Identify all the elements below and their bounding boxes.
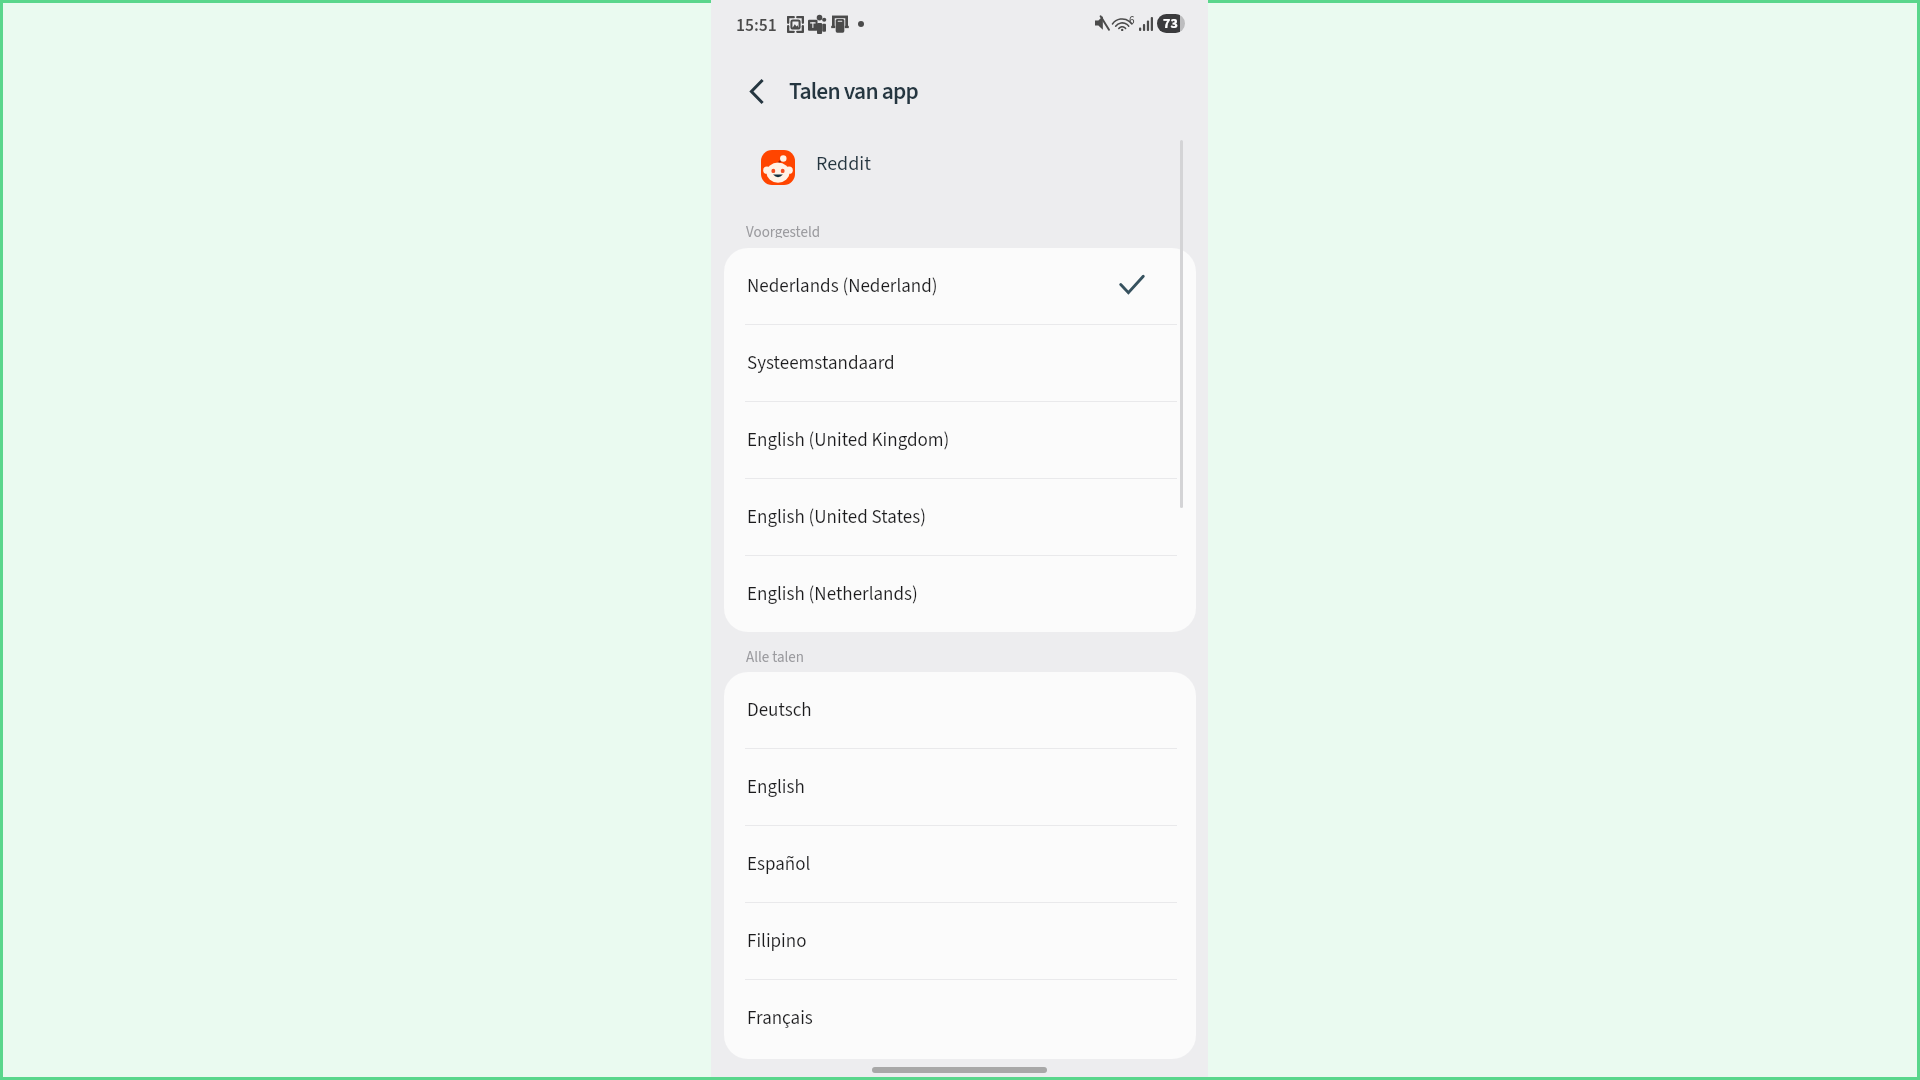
staticText: 73 bbox=[1163, 14, 1178, 33]
staticText: Systeemstandaard bbox=[747, 350, 895, 377]
staticText: English (Netherlands) bbox=[747, 581, 918, 608]
button[interactable]: Filipino bbox=[724, 903, 1196, 980]
staticText: Filipino bbox=[747, 928, 807, 955]
staticText: Nederlands (Nederland) bbox=[747, 273, 938, 300]
button[interactable]: Español bbox=[724, 826, 1196, 903]
button[interactable]: English bbox=[724, 749, 1196, 826]
button[interactable]: English (Netherlands) bbox=[724, 556, 1196, 632]
button[interactable]: Nederlands (Nederland) bbox=[724, 248, 1196, 325]
staticText: English (United States) bbox=[747, 504, 926, 531]
staticText: Talen van app bbox=[789, 75, 918, 108]
staticText: English (United Kingdom) bbox=[747, 427, 950, 454]
staticText: 6 bbox=[1129, 13, 1135, 29]
button[interactable]: Français bbox=[724, 980, 1196, 1057]
button[interactable]: English (United States) bbox=[724, 479, 1196, 556]
staticText: 15:51 bbox=[736, 13, 777, 35]
button[interactable]: Systeemstandaard bbox=[724, 325, 1196, 402]
staticText: Alle talen bbox=[746, 647, 805, 663]
button[interactable]: Back bbox=[739, 73, 775, 109]
button[interactable]: Deutsch bbox=[724, 672, 1196, 749]
staticText: Español bbox=[747, 851, 811, 878]
staticText: English bbox=[747, 774, 805, 801]
staticText: Deutsch bbox=[747, 697, 812, 724]
staticText: Reddit bbox=[816, 150, 871, 177]
staticText: Voorgesteld bbox=[746, 222, 821, 238]
button[interactable]: English (United Kingdom) bbox=[724, 402, 1196, 479]
staticText: Français bbox=[747, 1005, 813, 1032]
